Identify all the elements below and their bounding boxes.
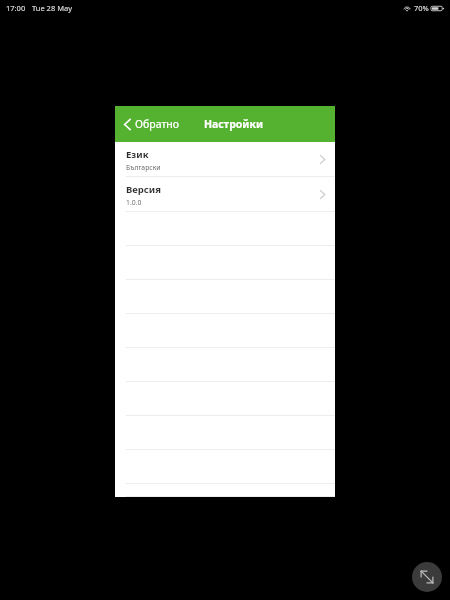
staticText: 1.0.0 (126, 198, 142, 207)
button[interactable]: Resize window (412, 562, 442, 592)
staticText: 70% (414, 3, 430, 13)
button[interactable]: Версия (115, 177, 335, 212)
staticText: Български (126, 163, 161, 172)
staticText: Език (126, 148, 149, 161)
button[interactable]: Обратно (120, 113, 182, 135)
staticText: 17:00 (6, 3, 26, 13)
staticText: Обратно (135, 117, 179, 131)
staticText: Настройки (204, 117, 263, 131)
button[interactable]: Език (115, 142, 335, 177)
staticText: Tue 28 May (32, 3, 72, 13)
staticText: Версия (126, 183, 161, 196)
